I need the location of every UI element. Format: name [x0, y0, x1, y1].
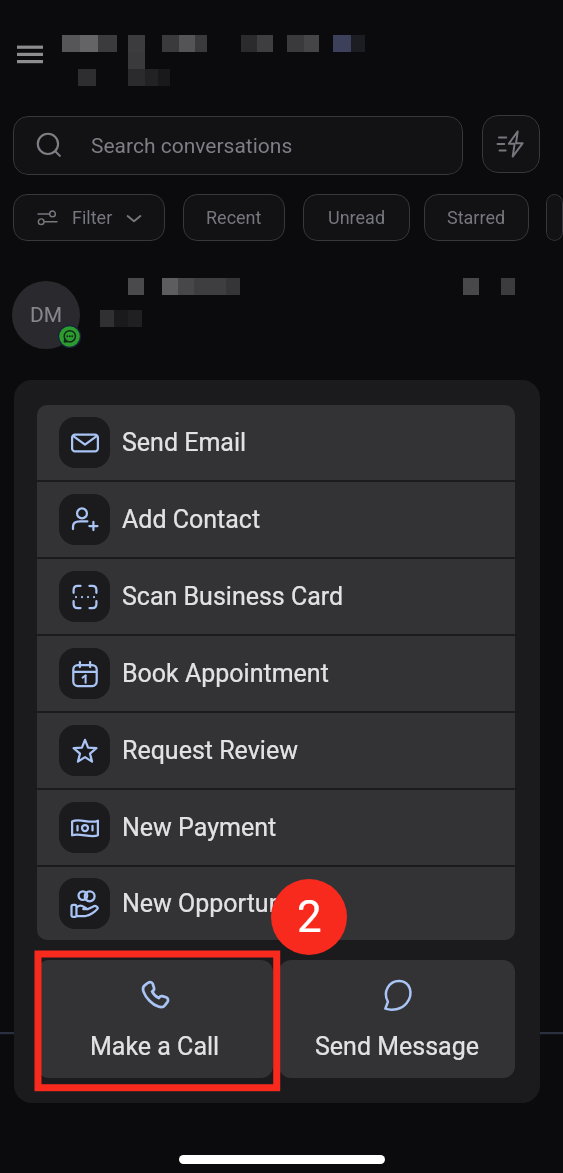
button[interactable]: Search conversations [13, 116, 463, 175]
staticText: Filter [72, 207, 113, 228]
button[interactable]: Quick actions [482, 115, 540, 173]
button[interactable]: New Payment [37, 790, 515, 865]
staticText: Starred [447, 207, 506, 228]
staticText: Request Review [122, 736, 298, 765]
button[interactable]: More filters [546, 194, 563, 241]
button[interactable]: Filter [13, 194, 165, 241]
staticText: Send Message [315, 1032, 479, 1061]
button[interactable]: Send Message [279, 960, 515, 1078]
staticText: 2 [297, 891, 322, 943]
staticText: Send Email [122, 428, 247, 457]
button[interactable]: Add Contact [37, 482, 515, 557]
button[interactable]: Recent [183, 194, 285, 241]
button[interactable]: Open navigation menu [13, 38, 47, 70]
button[interactable]: New Opportunity [37, 867, 515, 940]
button[interactable]: Send Email [37, 405, 515, 480]
staticText: New Payment [122, 813, 277, 842]
button[interactable]: Book Appointment [37, 636, 515, 711]
staticText: Recent [206, 207, 262, 228]
staticText: Book Appointment [122, 659, 329, 688]
staticText: Make a Call [90, 1032, 220, 1061]
staticText: New Opportunity [122, 889, 309, 918]
button[interactable]: Unread [303, 194, 410, 241]
staticText: Unread [328, 207, 386, 228]
button[interactable]: DM [0, 258, 563, 376]
staticText: DM [30, 303, 63, 328]
button[interactable]: Scan Business Card [37, 559, 515, 634]
staticText: Search conversations [91, 134, 293, 159]
staticText: Scan Business Card [122, 582, 344, 611]
button[interactable]: Starred [424, 194, 529, 241]
button[interactable]: Make a Call [37, 960, 273, 1078]
button[interactable]: Request Review [37, 713, 515, 788]
staticText: Add Contact [122, 505, 261, 534]
